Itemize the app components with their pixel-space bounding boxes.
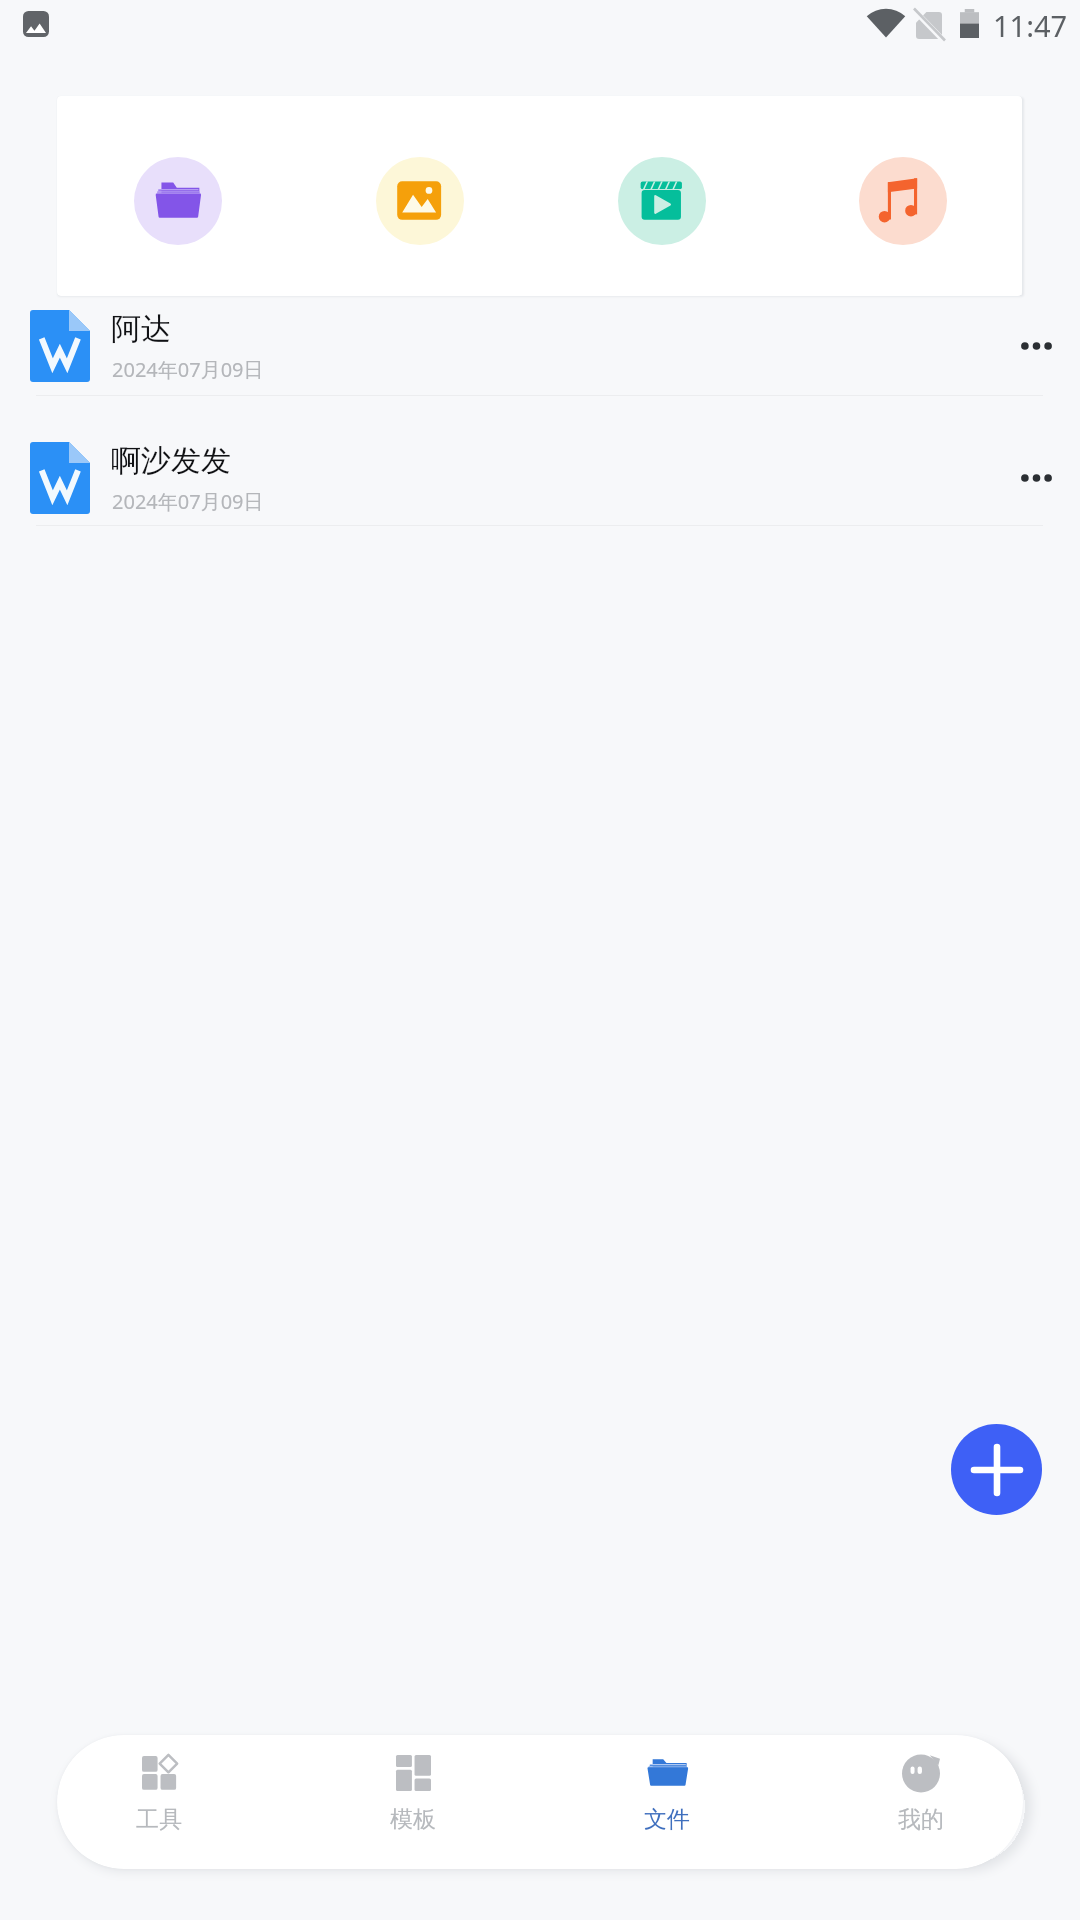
button[interactable]: 我的 xyxy=(851,1735,991,1869)
button[interactable]: Add new file xyxy=(951,1424,1042,1515)
button[interactable]: More options xyxy=(1001,311,1071,381)
button[interactable]: Pictures xyxy=(376,157,464,245)
button[interactable]: 文件 xyxy=(597,1735,737,1869)
staticText: 11:47 xyxy=(993,6,1068,45)
staticText: 2024年07月09日 xyxy=(112,356,264,383)
staticText: 文件 xyxy=(644,1805,690,1834)
staticText: 阿达 xyxy=(111,310,171,348)
staticText: 我的 xyxy=(898,1805,944,1834)
staticText: 啊沙发发 xyxy=(111,442,231,480)
button[interactable]: More options xyxy=(1001,443,1071,513)
staticText: 2024年07月09日 xyxy=(112,488,264,515)
button[interactable]: 工具 xyxy=(89,1735,229,1869)
button[interactable]: 阿达 xyxy=(0,273,1080,405)
button[interactable]: Videos xyxy=(618,157,706,245)
button[interactable]: Music xyxy=(859,157,947,245)
button[interactable]: 啊沙发发 xyxy=(0,405,1080,537)
staticText: 模板 xyxy=(390,1805,436,1834)
staticText: 工具 xyxy=(136,1805,182,1834)
button[interactable]: Documents xyxy=(134,157,222,245)
button[interactable]: 模板 xyxy=(343,1735,483,1869)
